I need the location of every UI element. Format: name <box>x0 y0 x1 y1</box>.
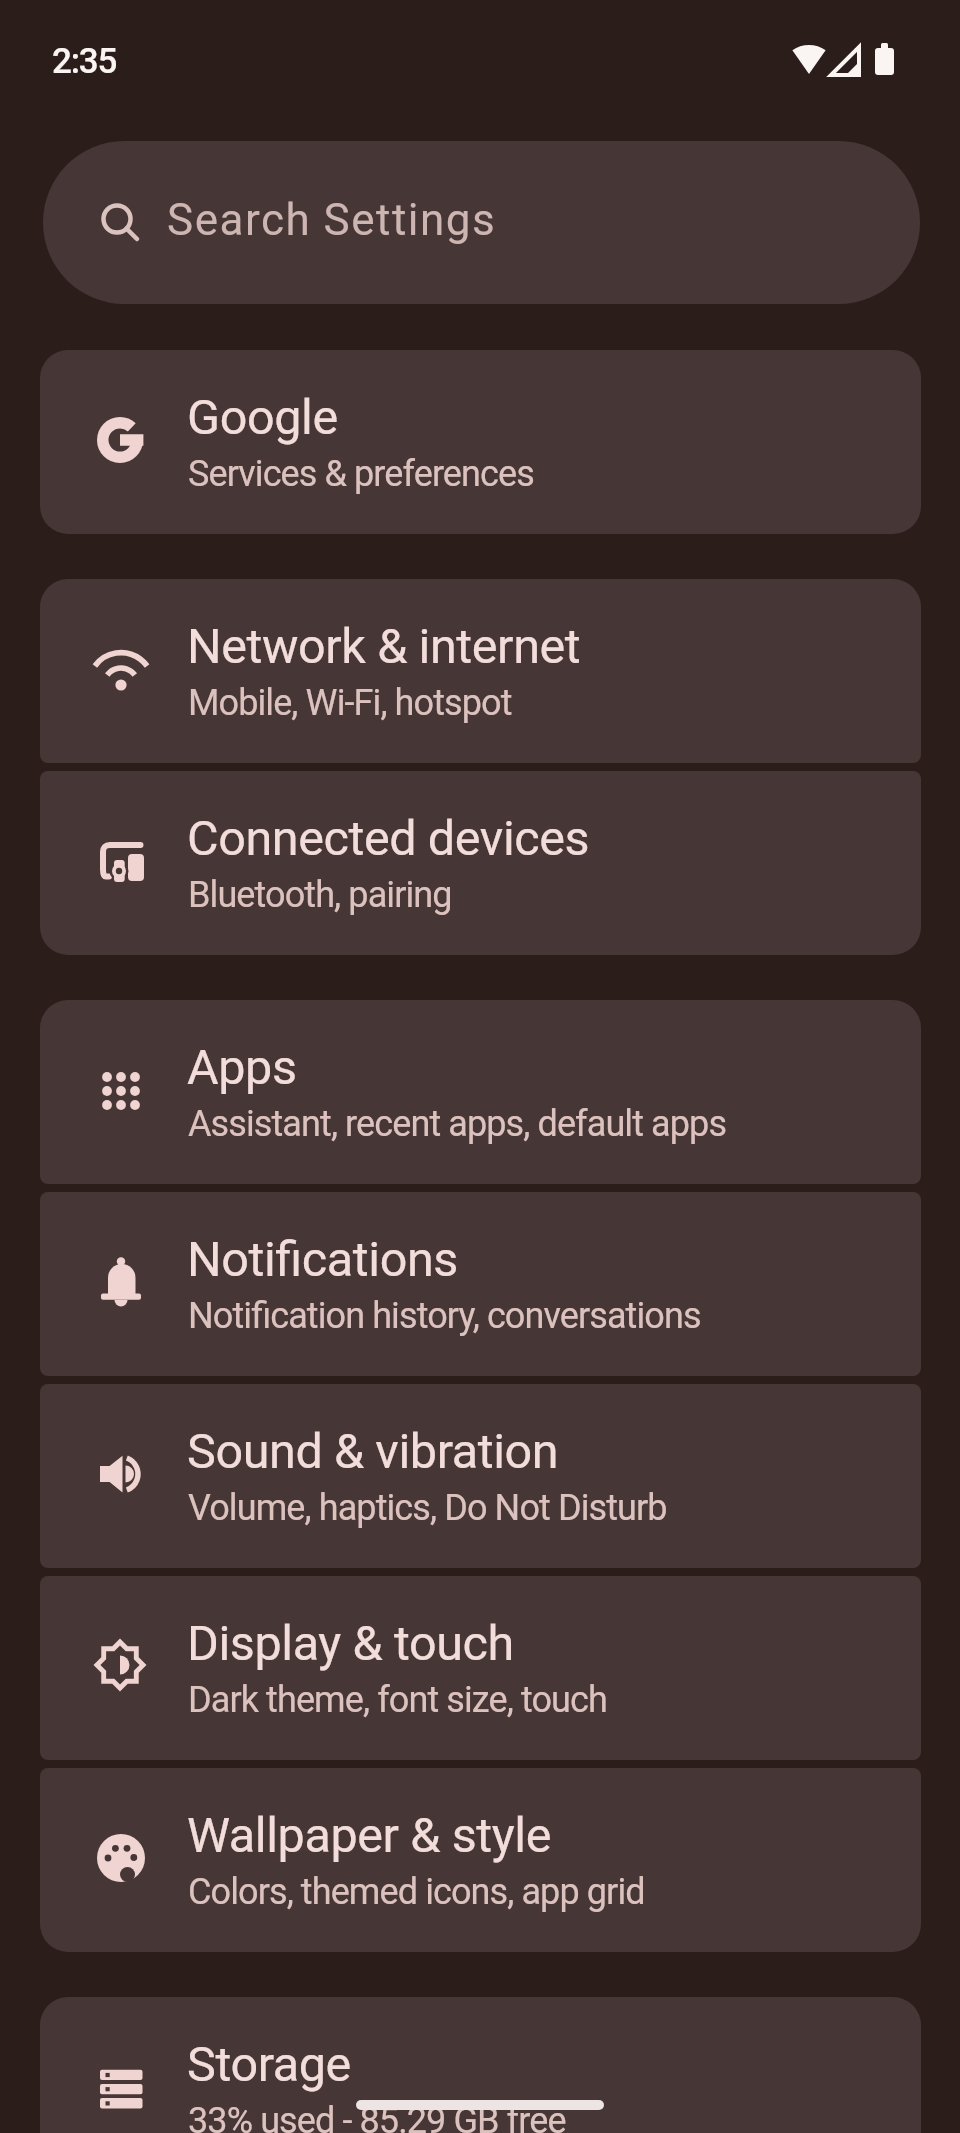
staticText: Notification history, conversations <box>188 1295 701 1337</box>
staticText: Google <box>187 389 338 446</box>
button[interactable]: Apps <box>40 1000 921 1184</box>
staticText: 2:35 <box>52 41 117 82</box>
button[interactable]: Google <box>40 350 921 534</box>
staticText: Storage <box>187 2036 351 2093</box>
staticText: Search Settings <box>167 194 497 246</box>
button[interactable]: Network & internet <box>40 579 921 763</box>
staticText: Display & touch <box>187 1615 514 1672</box>
staticText: Network & internet <box>187 618 581 675</box>
staticText: Bluetooth, pairing <box>188 874 452 916</box>
button[interactable]: Connected devices <box>40 771 921 955</box>
staticText: Sound & vibration <box>187 1423 559 1480</box>
staticText: Connected devices <box>187 810 590 867</box>
staticText: 33% used - 85.29 GB free <box>188 2100 566 2133</box>
staticText: Volume, haptics, Do Not Disturb <box>188 1487 667 1529</box>
staticText: Dark theme, font size, touch <box>188 1679 607 1721</box>
button[interactable]: Search Settings <box>43 141 920 304</box>
button[interactable]: Wallpaper & style <box>40 1768 921 1952</box>
staticText: Apps <box>187 1039 297 1096</box>
button[interactable]: Display & touch <box>40 1576 921 1760</box>
staticText: Colors, themed icons, app grid <box>188 1871 645 1913</box>
staticText: Assistant, recent apps, default apps <box>188 1103 727 1145</box>
staticText: Wallpaper & style <box>187 1807 552 1864</box>
button[interactable]: Notifications <box>40 1192 921 1376</box>
button[interactable]: Storage <box>40 1997 921 2133</box>
button[interactable]: Sound & vibration <box>40 1384 921 1568</box>
staticText: Mobile, Wi-Fi, hotspot <box>188 682 512 724</box>
staticText: Services & preferences <box>188 453 534 495</box>
staticText: Notifications <box>187 1231 458 1288</box>
